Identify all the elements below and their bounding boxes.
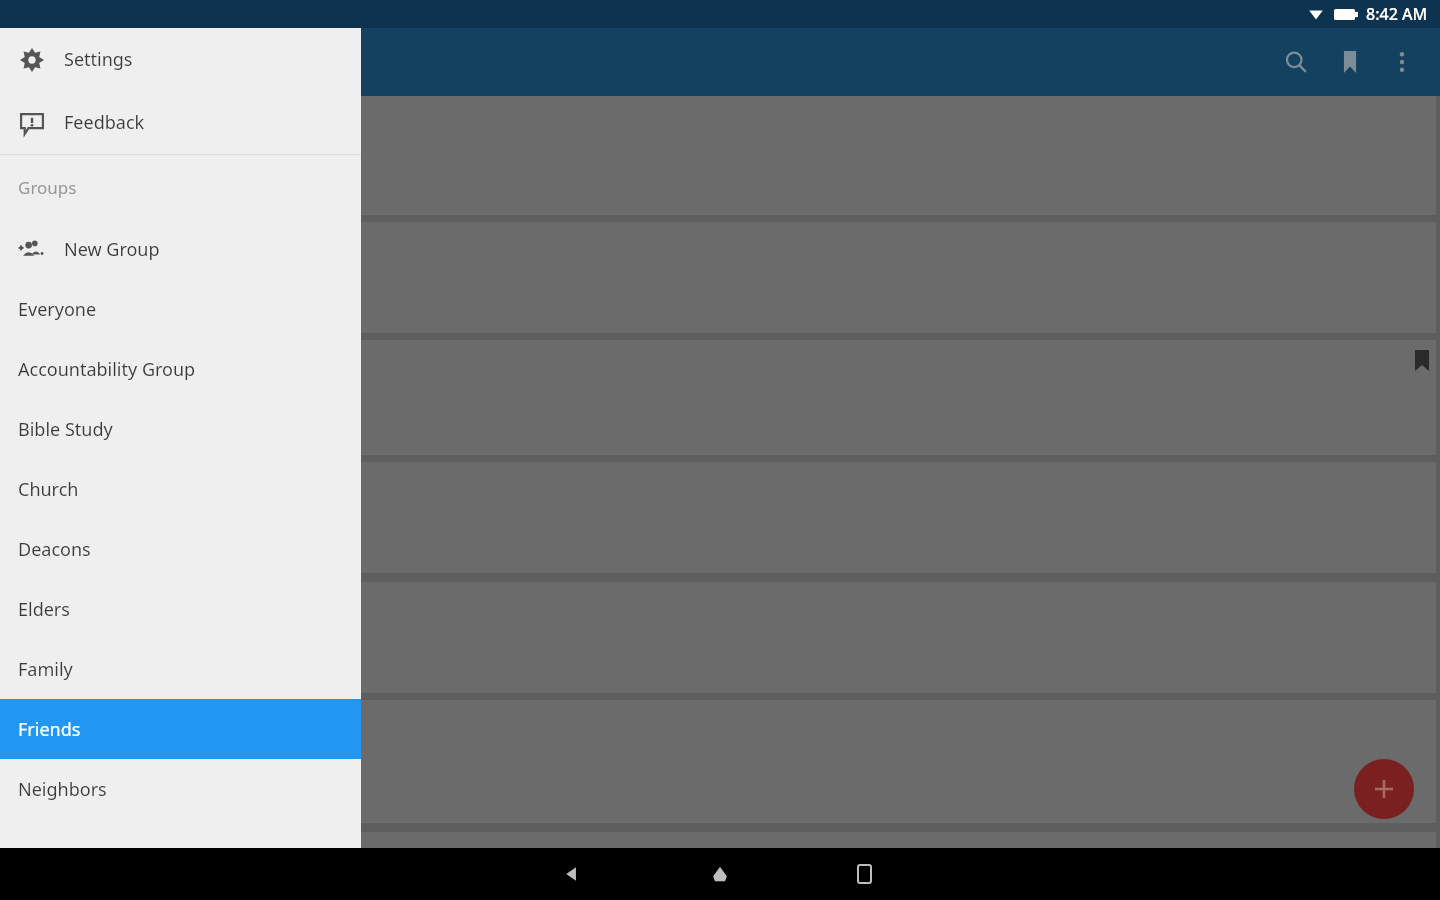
button[interactable]: Family (0, 639, 361, 699)
button[interactable]: New Group (0, 219, 361, 279)
staticText: Church (18, 477, 79, 502)
button[interactable]: Accountability Group (0, 339, 361, 399)
staticText: Neighbors (18, 777, 107, 802)
button[interactable] (4, 832, 1436, 848)
button[interactable]: Back (556, 858, 588, 890)
staticText: Settings (64, 47, 133, 72)
button[interactable] (4, 96, 1436, 215)
button[interactable]: Everyone (0, 279, 361, 339)
button[interactable] (4, 222, 1436, 333)
button[interactable] (4, 582, 1436, 693)
staticText: Friends (18, 717, 81, 742)
staticText: Accountability Group (18, 357, 196, 382)
staticText: Groups (18, 176, 77, 199)
button[interactable]: Feedback (0, 91, 361, 154)
button[interactable]: Recent apps (848, 858, 880, 890)
button[interactable]: Home (704, 858, 736, 890)
staticText: Family (18, 657, 73, 682)
button[interactable]: More options (1378, 38, 1426, 86)
staticText: Deacons (18, 537, 91, 562)
button[interactable]: Church (0, 459, 361, 519)
staticText: Feedback (64, 110, 145, 135)
staticText: Elders (18, 597, 70, 622)
staticText: 8:42 AM (1366, 3, 1428, 25)
button[interactable]: Bookmarks (1326, 38, 1374, 86)
button[interactable]: Neighbors (0, 759, 361, 819)
staticText: Everyone (18, 297, 97, 322)
button[interactable]: Bible Study (0, 399, 361, 459)
button[interactable] (4, 340, 1436, 455)
staticText: New Group (64, 237, 160, 262)
button[interactable]: Search (1272, 38, 1320, 86)
staticText: Bible Study (18, 417, 113, 442)
button[interactable] (4, 700, 1436, 823)
button[interactable]: Elders (0, 579, 361, 639)
other: Bookmarked (1411, 350, 1433, 372)
button[interactable]: Settings (0, 28, 361, 91)
button[interactable]: Add (1354, 759, 1414, 819)
button[interactable]: Deacons (0, 519, 361, 579)
button[interactable] (4, 462, 1436, 573)
button[interactable]: Friends (0, 699, 361, 759)
